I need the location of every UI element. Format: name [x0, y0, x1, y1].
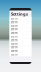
- staticText: Item: [11, 42, 17, 45]
- staticText: Item: [11, 53, 17, 56]
- staticText: Item: [11, 24, 17, 27]
- staticText: Item: [11, 31, 17, 35]
- staticText: Item: [11, 17, 17, 20]
- staticText: Item: [11, 35, 17, 38]
- staticText: Settings: [11, 11, 28, 17]
- staticText: Item: [11, 20, 17, 24]
- staticText: Item: [11, 49, 17, 53]
- staticText: Item: [11, 45, 17, 49]
- staticText: Item: [11, 27, 17, 31]
- staticText: Item: [11, 38, 17, 42]
